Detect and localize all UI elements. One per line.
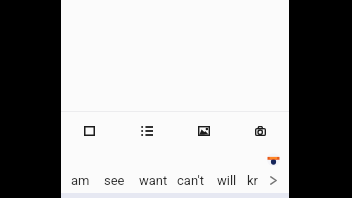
button[interactable]: Assistant — [267, 153, 280, 166]
button[interactable]: List — [118, 112, 175, 150]
staticText: am — [71, 173, 90, 188]
staticText: want — [139, 173, 168, 188]
button[interactable]: Text box — [61, 112, 118, 150]
staticText: see — [104, 173, 125, 188]
button[interactable]: am — [66, 161, 95, 198]
button[interactable]: Camera — [232, 112, 289, 150]
button[interactable]: will — [212, 161, 242, 198]
button[interactable]: Image — [175, 112, 232, 150]
button[interactable]: see — [99, 161, 130, 198]
button[interactable]: can't — [172, 161, 209, 198]
button[interactable]: want — [134, 161, 173, 198]
staticText: kr — [247, 173, 258, 188]
staticText: can't — [177, 173, 204, 188]
staticText: will — [217, 173, 237, 188]
button[interactable]: kr — [242, 161, 263, 198]
button[interactable]: More suggestions — [262, 161, 284, 198]
